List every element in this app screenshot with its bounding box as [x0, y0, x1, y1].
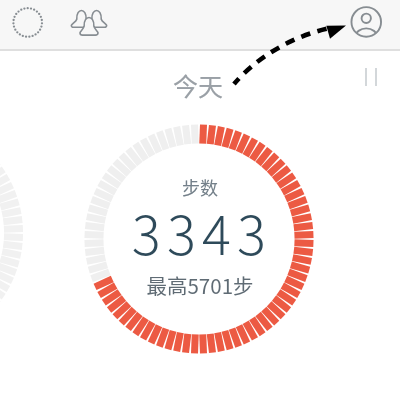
staticText: 步数 — [0, 174, 400, 200]
staticText: 3343 — [2, 192, 400, 270]
button[interactable]: 今天 — [173, 67, 224, 103]
button[interactable]: Profile — [349, 5, 383, 39]
button[interactable]: Pause — [356, 60, 386, 90]
staticText: 最高5701步 — [0, 270, 400, 300]
button[interactable]: Friends — [69, 2, 109, 42]
button[interactable]: Activity — [8, 2, 48, 42]
